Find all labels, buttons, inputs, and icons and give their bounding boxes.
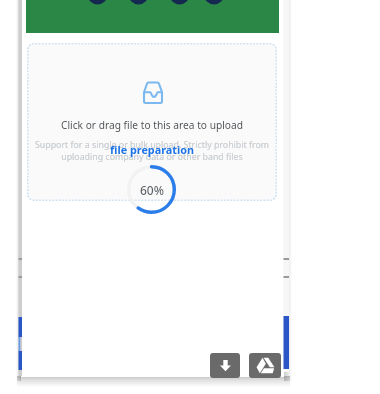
button[interactable]: Google Drive — [249, 353, 281, 378]
button[interactable]: Click or drag file to this area to uploa… — [27, 43, 277, 201]
staticText: Support for a single or bulk upload. Str… — [27, 139, 277, 163]
staticText: 60% — [140, 182, 164, 198]
staticText: file preparation — [27, 142, 277, 157]
staticText: Click or drag file to this area to uploa… — [27, 118, 277, 132]
button[interactable]: Download — [210, 353, 240, 378]
